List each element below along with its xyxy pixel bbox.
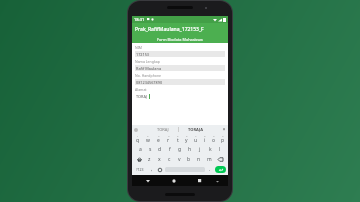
- staticText: 9: [213, 134, 215, 137]
- button[interactable]: 1: [133, 134, 143, 144]
- button[interactable]: Alamat: [132, 87, 228, 101]
- button[interactable]: 4: [163, 134, 173, 144]
- staticText: m: [207, 156, 212, 163]
- button[interactable]: l: [215, 144, 225, 154]
- button[interactable]: c: [164, 154, 174, 164]
- staticText: r: [167, 137, 170, 144]
- button[interactable]: Backspace: [214, 154, 227, 164]
- staticText: q: [136, 137, 140, 144]
- button[interactable]: 0: [218, 134, 227, 144]
- button[interactable]: g: [175, 144, 185, 154]
- staticText: u: [194, 137, 198, 144]
- button[interactable]: TORAJA: [188, 127, 204, 132]
- staticText: 6: [186, 134, 188, 137]
- staticText: Nama Lengkap: [135, 59, 160, 64]
- staticText: s: [149, 146, 152, 153]
- staticText: Prak_RafifMaulana_172153_F: [135, 26, 204, 33]
- staticText: k: [209, 146, 212, 153]
- button[interactable]: Shift: [133, 154, 145, 164]
- staticText: b: [187, 156, 191, 163]
- staticText: Alamat: [135, 87, 147, 92]
- button[interactable]: 6: [182, 134, 191, 144]
- button[interactable]: h: [185, 144, 195, 154]
- staticText: c: [168, 156, 171, 163]
- staticText: .: [209, 166, 211, 173]
- button[interactable]: z: [145, 154, 154, 164]
- staticText: 3: [158, 134, 160, 137]
- button[interactable]: b: [184, 154, 194, 164]
- button[interactable]: x: [154, 154, 164, 164]
- staticText: 8: [204, 134, 206, 137]
- staticText: 7: [195, 134, 197, 137]
- staticText: ,: [151, 166, 153, 173]
- staticText: z: [148, 156, 151, 163]
- button[interactable]: f: [165, 144, 175, 154]
- button[interactable]: n: [194, 154, 204, 164]
- button[interactable]: 3: [153, 134, 163, 144]
- staticText: d: [158, 146, 162, 153]
- staticText: l: [219, 146, 221, 153]
- staticText: 2: [147, 134, 149, 137]
- button[interactable]: Back: [143, 176, 153, 186]
- button[interactable]: 8: [200, 134, 209, 144]
- button[interactable]: a: [135, 144, 145, 154]
- staticText: i: [204, 137, 206, 144]
- staticText: TORAJ: [136, 94, 148, 99]
- button[interactable]: No. Handphone: [132, 73, 228, 87]
- button[interactable]: .: [206, 165, 214, 174]
- staticText: No. Handphone: [135, 73, 162, 78]
- staticText: t: [177, 137, 179, 144]
- button[interactable]: Prak_RafifMaulana_172153_F: [132, 23, 228, 36]
- staticText: v: [178, 156, 181, 163]
- staticText: f: [169, 146, 171, 153]
- button[interactable]: Enter: [215, 166, 226, 173]
- button[interactable]: TORAJ: [157, 127, 169, 132]
- staticText: 4: [168, 134, 170, 137]
- button[interactable]: Home: [169, 176, 179, 186]
- staticText: p: [221, 137, 225, 144]
- button[interactable]: Recents: [195, 176, 205, 186]
- staticText: j: [199, 146, 201, 153]
- staticText: 172153: [136, 52, 150, 57]
- button[interactable]: d: [155, 144, 165, 154]
- staticText: y: [185, 137, 188, 144]
- staticText: 5: [177, 134, 179, 137]
- button[interactable]: ?123: [133, 165, 147, 174]
- button[interactable]: m: [204, 154, 214, 164]
- staticText: NIM: [135, 45, 143, 50]
- button[interactable]: s: [145, 144, 155, 154]
- button[interactable]: v: [174, 154, 184, 164]
- staticText: ?123: [136, 167, 144, 172]
- staticText: a: [139, 146, 142, 153]
- button[interactable]: 2: [143, 134, 153, 144]
- staticText: w: [146, 137, 150, 144]
- staticText: h: [188, 146, 192, 153]
- staticText: e: [157, 137, 160, 144]
- staticText: 1: [137, 134, 139, 137]
- button[interactable]: ,: [147, 165, 156, 174]
- staticText: 18:31: [134, 17, 145, 22]
- staticText: g: [178, 146, 182, 153]
- staticText: Form Biodata Mahasiswa: [157, 37, 203, 42]
- button[interactable]: Emoji: [156, 165, 164, 174]
- staticText: n: [197, 156, 201, 163]
- button[interactable]: NIM: [132, 45, 228, 59]
- staticText: 0: [222, 134, 224, 137]
- staticText: x: [158, 156, 161, 163]
- button[interactable]: 9: [209, 134, 218, 144]
- button[interactable]: Voice input: [222, 128, 226, 132]
- button[interactable]: Google: [134, 128, 138, 132]
- button[interactable]: 7: [191, 134, 200, 144]
- staticText: Rafif Maulana: [136, 66, 162, 71]
- button[interactable]: j: [195, 144, 205, 154]
- button[interactable]: 5: [173, 134, 182, 144]
- button[interactable]: Nama Lengkap: [132, 59, 228, 73]
- button[interactable]: k: [205, 144, 215, 154]
- staticText: 081234567890: [136, 80, 163, 85]
- button[interactable]: Hide keyboard: [213, 177, 221, 185]
- staticText: o: [212, 137, 216, 144]
